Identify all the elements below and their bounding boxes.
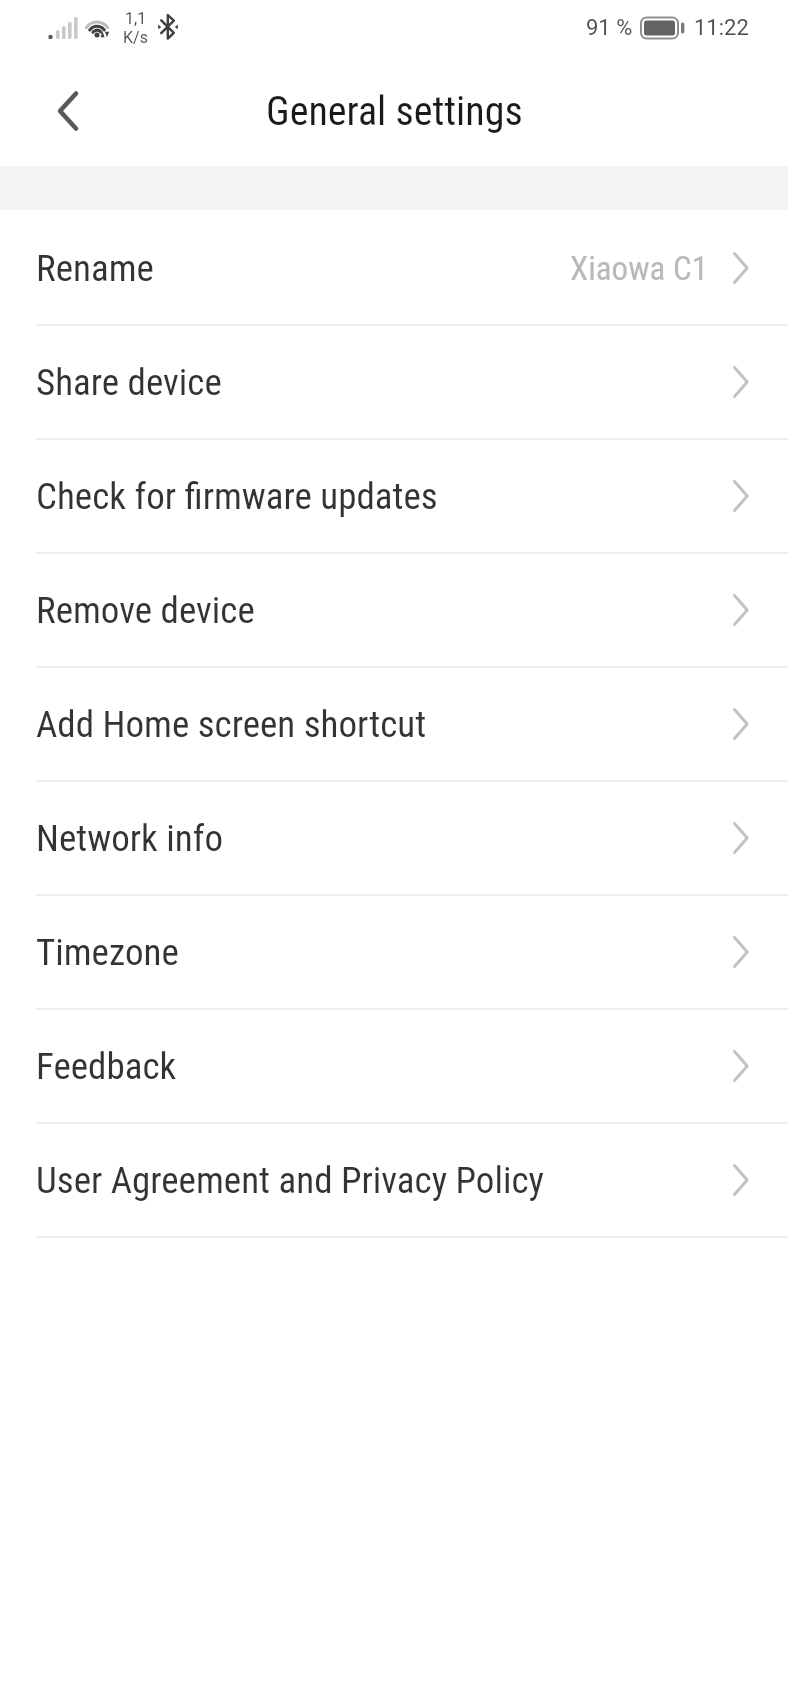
staticText: Rename <box>36 247 154 290</box>
button[interactable] <box>38 81 98 141</box>
button[interactable]: User Agreement and Privacy Policy <box>0 1124 788 1238</box>
staticText: Add Home screen shortcut <box>36 703 427 746</box>
staticText: Check for firmware updates <box>36 475 438 518</box>
staticText: Feedback <box>36 1045 177 1088</box>
staticText: Timezone <box>36 931 179 974</box>
staticText: 1,1 <box>125 9 147 28</box>
staticText: User Agreement and Privacy Policy <box>36 1159 544 1202</box>
button[interactable]: Check for firmware updates <box>0 440 788 554</box>
button[interactable]: Add Home screen shortcut <box>0 668 788 782</box>
staticText: Share device <box>36 361 222 404</box>
staticText: Xiaowa C1 <box>570 249 708 288</box>
button[interactable]: Rename <box>0 212 788 326</box>
button[interactable]: Timezone <box>0 896 788 1010</box>
button[interactable]: Network info <box>0 782 788 896</box>
staticText: 91 % <box>586 15 633 41</box>
staticText: K/s <box>123 28 148 47</box>
button[interactable]: Remove device <box>0 554 788 668</box>
button[interactable]: Feedback <box>0 1010 788 1124</box>
button[interactable]: Share device <box>0 326 788 440</box>
staticText: Remove device <box>36 589 255 632</box>
staticText: Network info <box>36 817 223 860</box>
staticText: General settings <box>266 88 523 135</box>
staticText: 11:22 <box>694 15 749 41</box>
